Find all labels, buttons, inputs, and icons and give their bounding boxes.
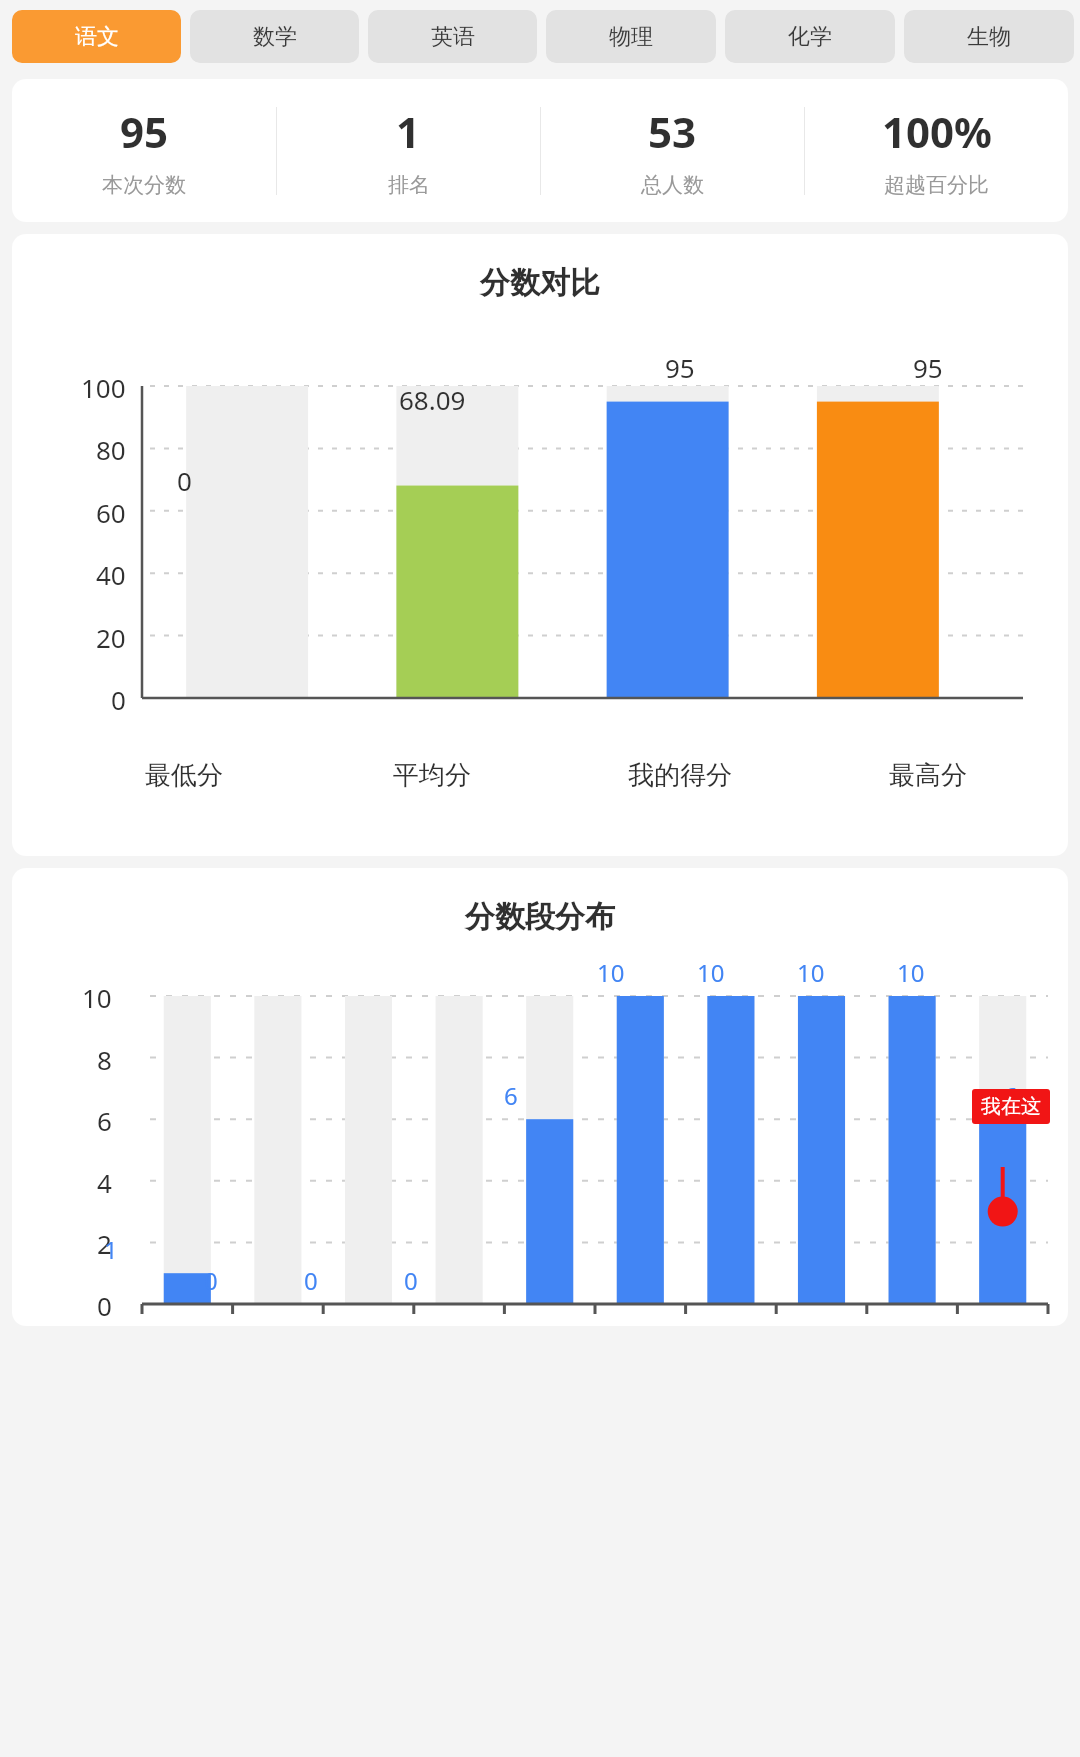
staticText: 数学 <box>253 23 297 51</box>
button[interactable]: 物理 <box>546 10 716 63</box>
staticText: 10 <box>797 956 825 989</box>
staticText: 100% <box>882 103 992 160</box>
staticText: 平均分 <box>393 759 471 792</box>
staticText: 英语 <box>431 23 475 51</box>
staticText: 化学 <box>788 23 832 51</box>
staticText: 排名 <box>388 172 430 198</box>
staticText: 0 <box>404 1264 418 1297</box>
staticText: 95 <box>913 350 943 385</box>
staticText: 8 <box>97 1042 112 1077</box>
staticText: 10 <box>597 956 625 989</box>
staticText: 100 <box>81 370 126 405</box>
staticText: 60 <box>96 495 126 530</box>
staticText: 10 <box>697 956 725 989</box>
staticText: 10 <box>897 956 925 989</box>
staticText: 40 <box>96 557 126 592</box>
button[interactable]: 英语 <box>368 10 537 63</box>
staticText: 95 <box>120 103 169 160</box>
staticText: 分数对比 <box>12 264 1068 302</box>
staticText: 80 <box>96 432 126 467</box>
button[interactable]: 数学 <box>190 10 359 63</box>
staticText: 10 <box>82 980 112 1015</box>
staticText: 我在这 <box>981 1094 1041 1119</box>
other: 我在这 <box>981 1094 1041 1119</box>
button[interactable]: 语文 <box>12 10 181 63</box>
staticText: 我的得分 <box>628 759 732 792</box>
staticText: 最低分 <box>145 759 223 792</box>
staticText: 2 <box>97 1226 112 1261</box>
staticText: 本次分数 <box>102 172 186 198</box>
staticText: 总人数 <box>641 172 704 198</box>
staticText: 6 <box>97 1103 112 1138</box>
button[interactable]: 化学 <box>725 10 895 63</box>
staticText: 20 <box>96 620 126 655</box>
staticText: 6 <box>1004 1079 1018 1112</box>
staticText: 95 <box>665 350 695 385</box>
staticText: 0 <box>177 463 192 498</box>
staticText: 6 <box>504 1079 518 1112</box>
staticText: 分数段分布 <box>12 898 1068 936</box>
staticText: 语文 <box>75 23 119 51</box>
staticText: 生物 <box>967 23 1011 51</box>
staticText: 物理 <box>609 23 653 51</box>
staticText: 0 <box>304 1264 318 1297</box>
staticText: 1 <box>104 1233 118 1266</box>
staticText: 0 <box>97 1288 112 1323</box>
button[interactable]: 生物 <box>904 10 1074 63</box>
staticText: 1 <box>396 103 421 160</box>
staticText: 4 <box>97 1165 112 1200</box>
staticText: 超越百分比 <box>884 172 989 198</box>
staticText: 68.09 <box>399 382 466 417</box>
staticText: 0 <box>111 682 126 717</box>
staticText: 最高分 <box>889 759 967 792</box>
staticText: 53 <box>648 103 697 160</box>
staticText: 0 <box>204 1264 218 1297</box>
